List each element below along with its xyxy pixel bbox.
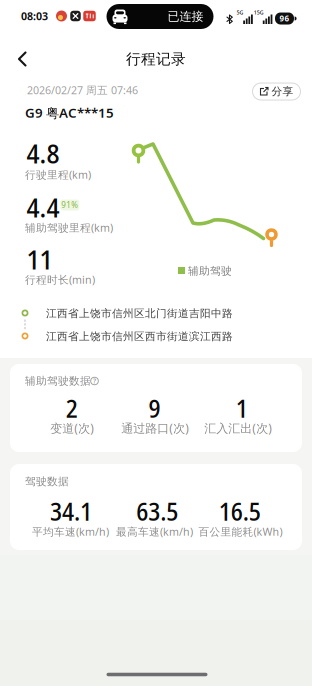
staticText: 驾驶数据 <box>25 475 69 488</box>
staticText: 4.4 <box>26 188 59 226</box>
button[interactable]: 车辆已连接 <box>106 4 213 29</box>
staticText: 1 <box>236 391 248 425</box>
staticText: 4.8 <box>26 134 59 172</box>
staticText: 汇入汇出(次) <box>204 420 272 436</box>
staticText: 9 <box>149 391 161 425</box>
staticText: 96 <box>279 13 289 24</box>
staticText: G9 粤AC***15 <box>25 104 114 121</box>
staticText: 辅助驾驶 <box>188 264 232 277</box>
staticText: 16.5 <box>219 494 261 528</box>
staticText: 15G <box>254 9 264 16</box>
staticText: 变道(次) <box>50 420 94 436</box>
staticText: 11 <box>26 240 52 278</box>
staticText: 辅助驾驶里程(km) <box>25 220 113 235</box>
staticText: 百公里能耗(kWh) <box>198 524 282 539</box>
staticText: 平均车速(km/h) <box>32 524 109 539</box>
staticText: 08:03 <box>21 9 48 23</box>
staticText: 91% <box>61 200 78 210</box>
button[interactable]: 返回 <box>8 44 38 74</box>
staticText: 34.1 <box>50 494 92 528</box>
staticText: 最高车速(km/h) <box>116 524 193 539</box>
staticText: 辅助驾驶数据 <box>25 374 91 387</box>
button[interactable]: 说明 <box>90 377 99 385</box>
staticText: 行程记录 <box>126 50 186 68</box>
button[interactable]: 分享 <box>252 82 301 100</box>
staticText: ? <box>93 377 96 385</box>
staticText: 2026/02/27 周五 07:46 <box>27 83 138 97</box>
staticText: 江西省上饶市信州区西市街道滨江西路 <box>46 330 233 343</box>
staticText: 江西省上饶市信州区北门街道吉阳中路 <box>46 307 233 320</box>
staticText: 5G <box>236 9 243 16</box>
staticText: 行程时长(min) <box>25 272 95 287</box>
staticText: 63.5 <box>136 494 178 528</box>
staticText: 2 <box>66 391 78 425</box>
staticText: 分享 <box>271 85 293 98</box>
staticText: 通过路口(次) <box>121 420 189 436</box>
staticText: 已连接 <box>167 9 203 24</box>
staticText: 行驶里程(km) <box>25 167 91 182</box>
